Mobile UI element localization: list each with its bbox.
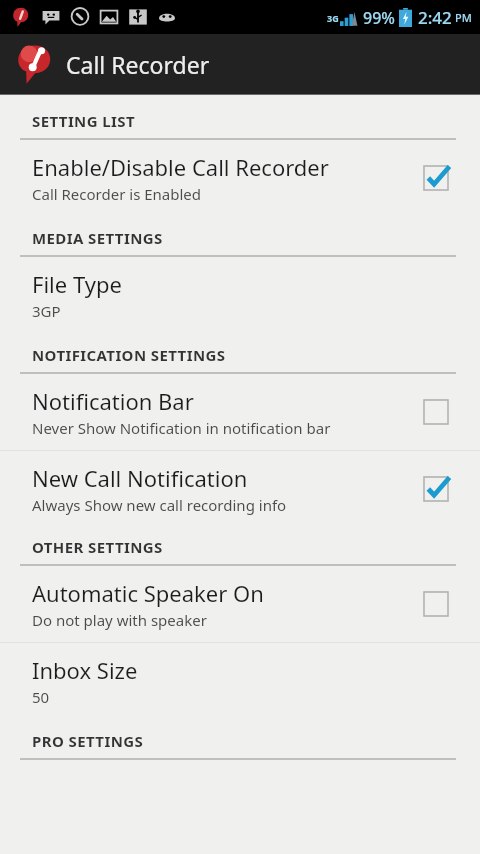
button[interactable]: Checked (421, 474, 451, 504)
button[interactable]: Unchecked (421, 589, 451, 619)
staticText: Enable/Disable Call Recorder (32, 152, 329, 182)
staticText: Automatic Speaker On (32, 578, 264, 608)
staticText: SETTING LIST (32, 111, 136, 131)
staticText: NOTIFICATION SETTINGS (32, 345, 226, 365)
staticText: 3G (327, 12, 339, 24)
staticText: Notification Bar (32, 386, 194, 416)
staticText: PM (455, 10, 472, 25)
button[interactable]: Automatic Speaker On (0, 566, 480, 642)
button[interactable]: Unchecked (421, 397, 451, 427)
button[interactable]: Notification Bar (0, 374, 480, 450)
button[interactable]: File Type (0, 257, 480, 333)
staticText: 50 (32, 687, 50, 707)
staticText: File Type (32, 269, 122, 299)
staticText: Always Show new call recording info (32, 495, 287, 515)
button[interactable]: Checked (421, 163, 451, 193)
staticText: 2:42 (418, 6, 452, 29)
staticText: MEDIA SETTINGS (32, 228, 163, 248)
staticText: OTHER SETTINGS (32, 537, 163, 557)
button[interactable]: Enable/Disable Call Recorder (0, 140, 480, 216)
staticText: Never Show Notification in notification … (32, 418, 331, 438)
button[interactable]: Inbox Size (0, 643, 480, 719)
button[interactable]: New Call Notification (0, 451, 480, 527)
staticText: 99% (363, 7, 395, 29)
staticText: PRO SETTINGS (32, 731, 144, 751)
staticText: Do not play with speaker (32, 610, 207, 630)
staticText: Call Recorder (66, 49, 210, 80)
staticText: 3GP (32, 301, 61, 321)
staticText: Inbox Size (32, 655, 138, 685)
staticText: New Call Notification (32, 463, 248, 493)
staticText: Call Recorder is Enabled (32, 184, 202, 204)
